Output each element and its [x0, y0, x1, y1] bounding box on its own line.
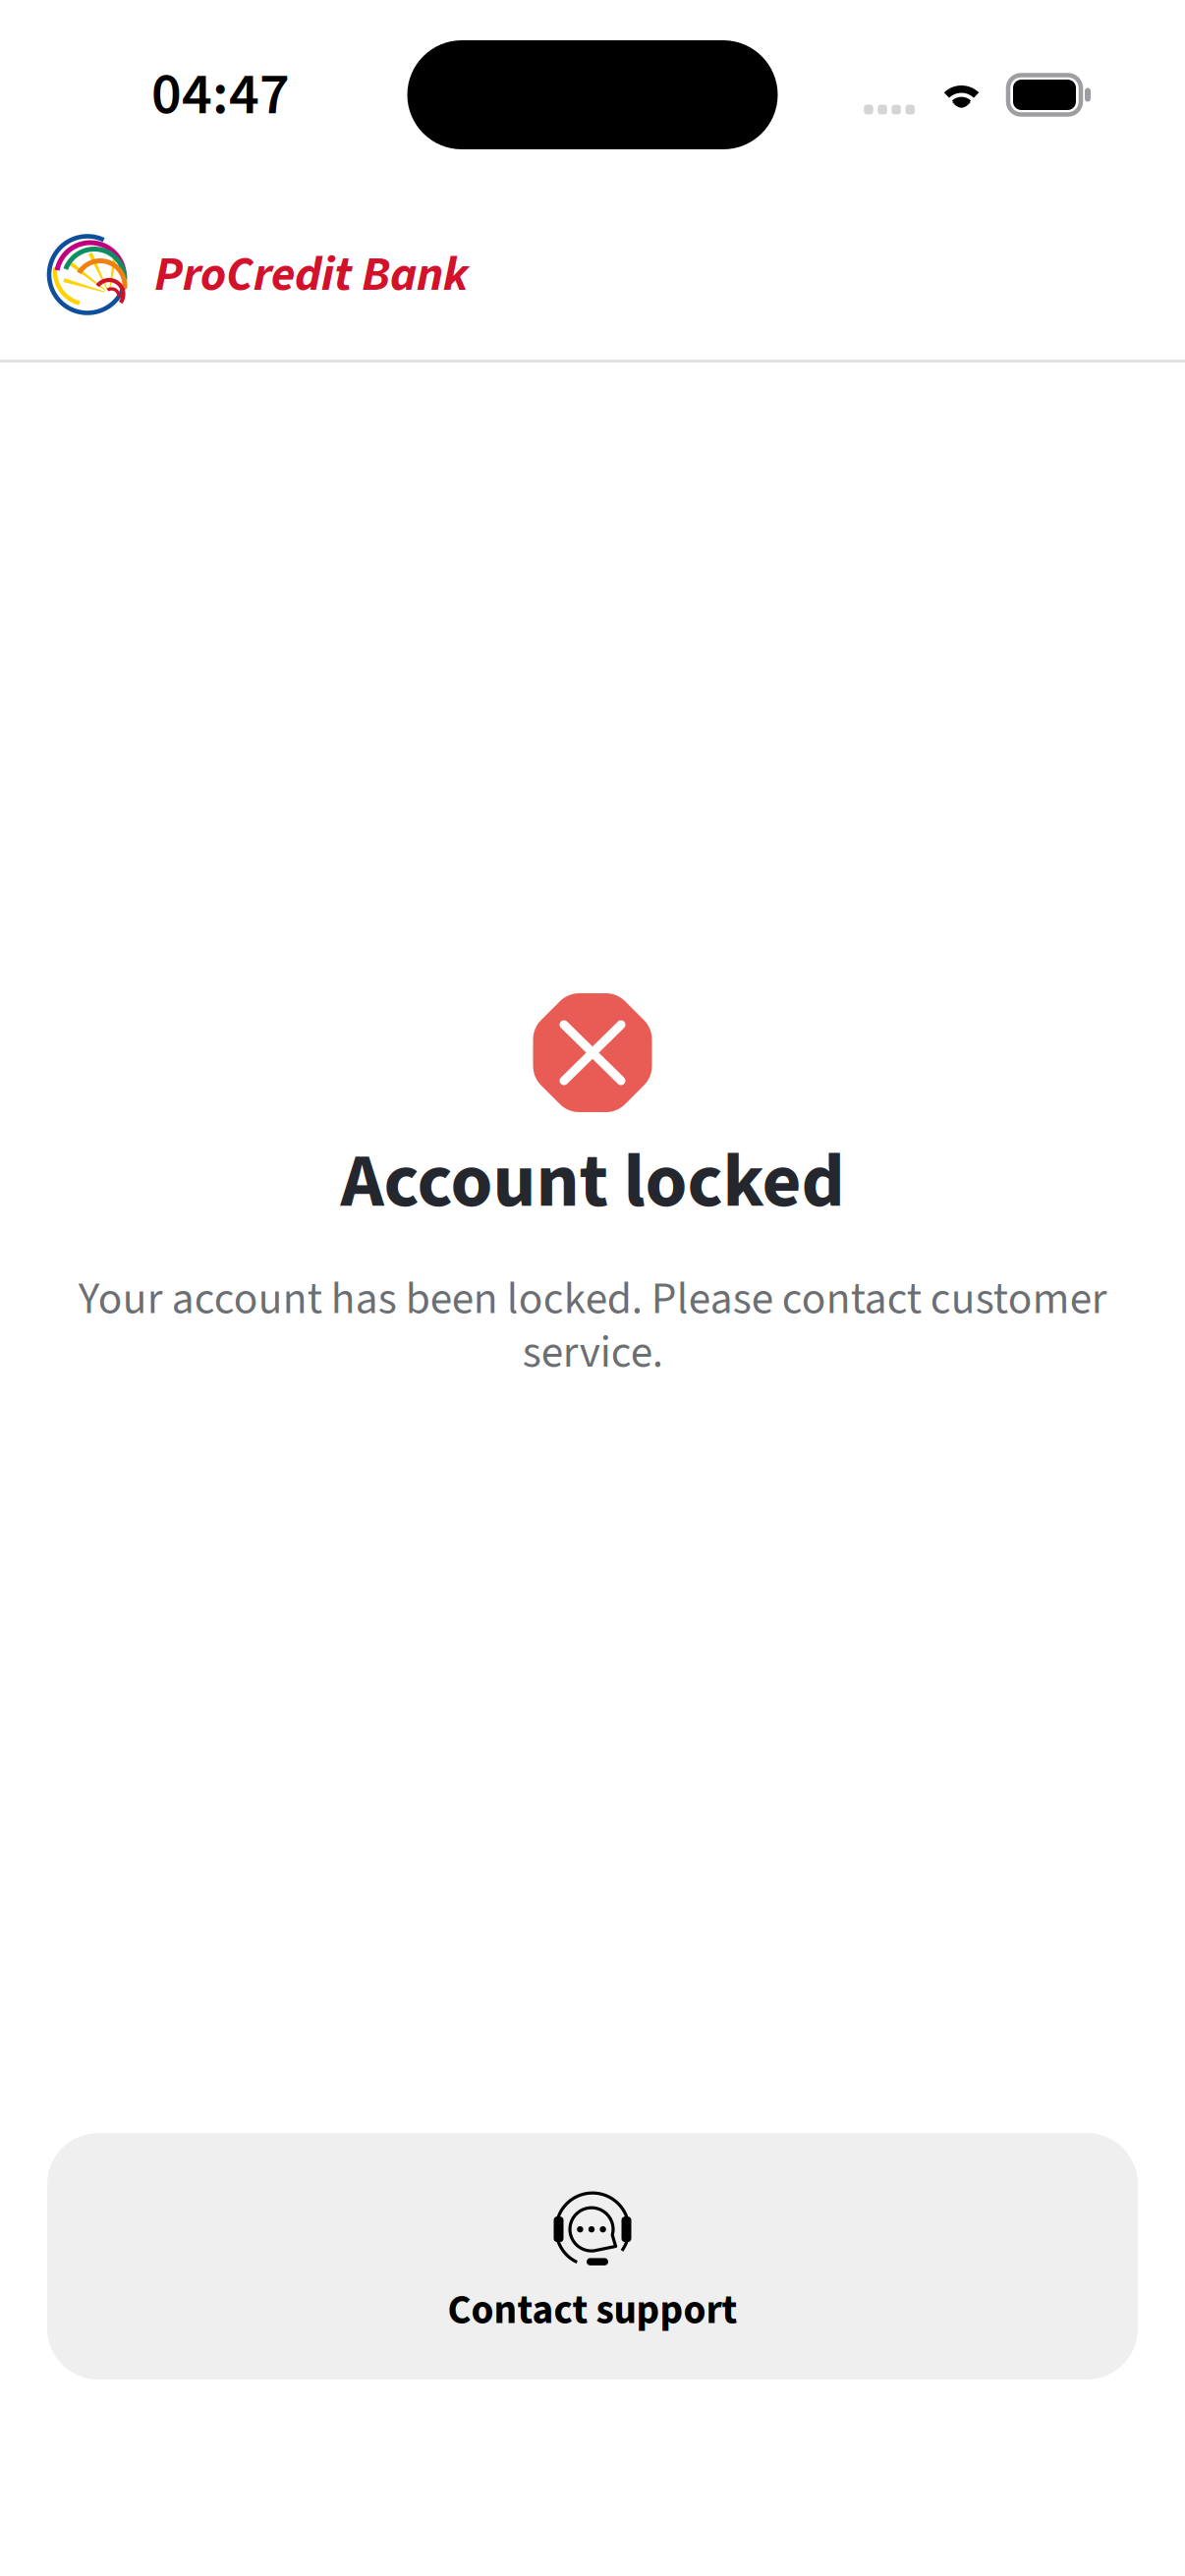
staticText: Contact support: [448, 2281, 737, 2339]
staticText: Your account has been locked. Please con…: [78, 1267, 1107, 1384]
button[interactable]: Contact support: [47, 2133, 1138, 2380]
staticText: ProCredit Bank: [154, 240, 469, 309]
staticText: 04:47: [151, 53, 290, 137]
staticText: Account locked: [340, 1128, 845, 1236]
